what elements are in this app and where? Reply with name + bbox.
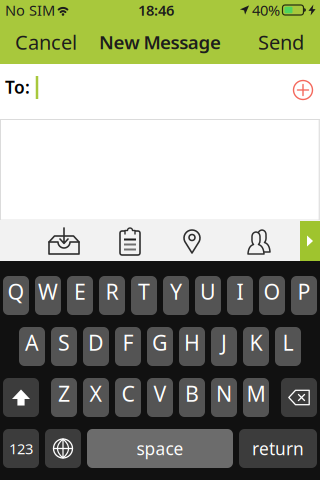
staticText: N [216,379,232,408]
staticText: Y [170,277,182,306]
button[interactable]: Add Contact [293,80,313,100]
button[interactable]: D [83,327,109,366]
staticText: G [152,328,168,357]
staticText: R [105,277,118,306]
button[interactable]: 123 [3,429,39,468]
button[interactable]: K [243,327,269,366]
staticText: C [121,379,134,408]
button[interactable]: I [227,276,253,315]
button[interactable]: J [211,327,237,366]
staticText: No SIM [5,0,55,20]
staticText: Z [58,379,70,408]
staticText: 40% [252,0,280,20]
button[interactable]: Q [3,276,29,315]
button[interactable]: H [179,327,205,366]
button[interactable]: V [147,378,173,417]
button[interactable]: Contacts [232,221,286,261]
button[interactable]: space [87,429,233,468]
button[interactable]: A [19,327,45,366]
staticText: L [282,328,293,357]
button[interactable]: Y [163,276,189,315]
button[interactable]: G [147,327,173,366]
staticText: D [88,328,104,357]
staticText: To: [5,75,30,98]
button[interactable]: B [179,378,205,417]
staticText: T [138,277,150,306]
button[interactable]: Shift [3,378,39,417]
staticText: A [25,328,39,357]
staticText: H [184,328,200,357]
button[interactable]: X [83,378,109,417]
staticText: Cancel [15,29,77,55]
staticText: 123 [9,439,33,458]
staticText: W [38,277,58,306]
button[interactable]: Z [51,378,77,417]
button[interactable]: Location [165,221,219,261]
button[interactable]: U [195,276,221,315]
button[interactable]: Next keyboard [45,429,81,468]
staticText: New Message [99,30,221,54]
button[interactable]: N [211,378,237,417]
staticText: return [252,437,304,460]
staticText: F [122,328,133,357]
staticText: V [153,379,166,408]
button[interactable]: L [275,327,301,366]
button[interactable]: Delete [281,378,317,417]
button[interactable]: C [115,378,141,417]
button[interactable]: R [99,276,125,315]
staticText: J [221,328,227,357]
button[interactable]: T [131,276,157,315]
button[interactable]: W [35,276,61,315]
button[interactable]: return [239,429,317,468]
button[interactable]: Cancel [15,29,77,55]
staticText: B [185,379,199,408]
staticText: space [136,437,183,460]
button[interactable]: E [67,276,93,315]
staticText: S [58,328,70,357]
staticText: E [74,277,86,306]
button[interactable]: Send [258,29,304,55]
staticText: K [249,328,262,357]
staticText: P [297,277,310,306]
staticText: Send [258,29,304,55]
button[interactable]: More [300,221,320,261]
staticText: O [263,277,280,306]
button[interactable]: P [291,276,317,315]
staticText: U [200,277,216,306]
staticText: I [236,277,243,306]
button[interactable]: O [259,276,285,315]
button[interactable]: Drafts [37,222,91,262]
button[interactable]: M [243,378,269,417]
button[interactable]: S [51,327,77,366]
staticText: M [246,379,265,408]
button[interactable]: Templates [103,221,157,261]
button[interactable]: F [115,327,141,366]
staticText: Q [7,277,24,306]
staticText: 18:46 [138,0,174,20]
staticText: X [89,379,102,408]
